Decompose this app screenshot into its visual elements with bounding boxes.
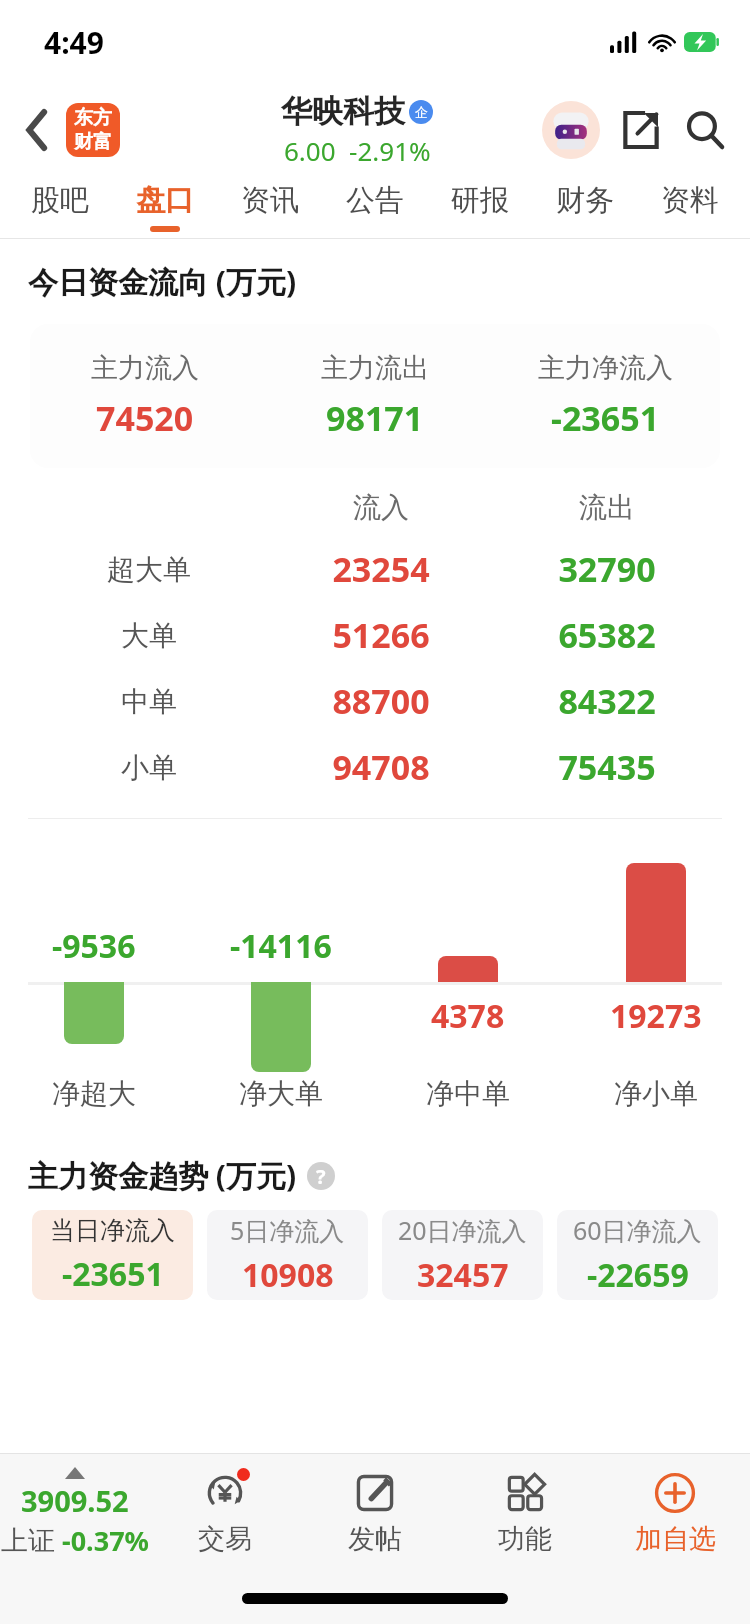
staticText: 大单 bbox=[121, 618, 177, 653]
staticText: 净超大 bbox=[52, 1076, 136, 1111]
button[interactable]: 大单 bbox=[30, 602, 720, 668]
staticText: 32457 bbox=[417, 1253, 509, 1297]
button[interactable]: 发帖 bbox=[300, 1454, 450, 1572]
staticText: 企 bbox=[415, 104, 428, 120]
staticText: -23651 bbox=[551, 395, 660, 441]
staticText: 32790 bbox=[494, 546, 720, 592]
staticText: -14116 bbox=[230, 924, 332, 968]
button[interactable]: 小单 bbox=[30, 734, 720, 800]
staticText: 94708 bbox=[268, 744, 494, 790]
button[interactable]: 超大单 bbox=[30, 536, 720, 602]
button[interactable]: 3909.52 bbox=[0, 1454, 150, 1572]
staticText: 资讯 bbox=[241, 182, 299, 219]
staticText: 研报 bbox=[451, 182, 509, 219]
staticText: 10908 bbox=[242, 1253, 334, 1297]
button[interactable]: 5日净流入 bbox=[207, 1210, 368, 1300]
staticText: 3909.52 bbox=[21, 1481, 129, 1520]
staticText: 小单 bbox=[121, 750, 177, 785]
staticText: 51266 bbox=[268, 612, 494, 658]
button[interactable]: 功能 bbox=[450, 1454, 600, 1572]
button[interactable]: 研报 bbox=[427, 176, 532, 238]
button[interactable]: Search bbox=[678, 103, 732, 157]
staticText: -0.37% bbox=[55, 1522, 149, 1559]
staticText: 主力净流入 bbox=[538, 351, 673, 385]
button[interactable]: 当日净流入 bbox=[32, 1210, 193, 1300]
staticText: 功能 bbox=[498, 1522, 552, 1556]
staticText: -9536 bbox=[52, 924, 136, 968]
staticText: 74520 bbox=[96, 395, 194, 441]
staticText: 4378 bbox=[431, 994, 505, 1038]
staticText: 上证 bbox=[1, 1524, 55, 1558]
staticText: 华映科技 bbox=[281, 92, 405, 131]
staticText: 5日净流入 bbox=[230, 1213, 345, 1247]
staticText: 发帖 bbox=[348, 1522, 402, 1556]
staticText: 60日净流入 bbox=[573, 1213, 702, 1247]
staticText: 财富 bbox=[74, 130, 112, 154]
staticText: 4:49 bbox=[44, 22, 104, 63]
staticText: 财务 bbox=[556, 182, 614, 219]
staticText: 6.00 -2.91% bbox=[284, 133, 431, 168]
button[interactable]: 中单 bbox=[30, 668, 720, 734]
staticText: 超大单 bbox=[107, 552, 191, 587]
staticText: 主力流入 bbox=[91, 351, 199, 385]
staticText: 98171 bbox=[326, 395, 424, 441]
staticText: 净大单 bbox=[239, 1076, 323, 1111]
button[interactable]: 4378 bbox=[374, 819, 562, 1119]
staticText: 84322 bbox=[494, 678, 720, 724]
staticText: 75435 bbox=[494, 744, 720, 790]
button[interactable]: Back bbox=[10, 102, 66, 158]
button[interactable]: Share bbox=[616, 105, 666, 155]
button[interactable]: Help bbox=[307, 1162, 335, 1190]
button[interactable]: 交易 bbox=[150, 1454, 300, 1572]
staticText: 资料 bbox=[661, 182, 719, 219]
staticText: 东方 bbox=[74, 106, 112, 130]
staticText: 净中单 bbox=[426, 1076, 510, 1111]
staticText: 盘口 bbox=[136, 182, 194, 219]
button[interactable]: 盘口 bbox=[112, 176, 217, 238]
staticText: 流出 bbox=[494, 490, 720, 525]
button[interactable]: -14116 bbox=[187, 819, 374, 1119]
button[interactable]: 资讯 bbox=[217, 176, 322, 238]
staticText: 当日净流入 bbox=[50, 1215, 175, 1246]
staticText: -23651 bbox=[62, 1252, 164, 1296]
button[interactable]: 19273 bbox=[562, 819, 750, 1119]
button[interactable]: -9536 bbox=[0, 819, 187, 1119]
staticText: 加自选 bbox=[635, 1522, 716, 1556]
staticText: 交易 bbox=[198, 1522, 252, 1556]
staticText: 公告 bbox=[346, 182, 404, 219]
staticText: 主力流出 bbox=[321, 351, 429, 385]
staticText: 88700 bbox=[268, 678, 494, 724]
button[interactable]: 主力流入 bbox=[30, 324, 720, 468]
button[interactable]: 20日净流入 bbox=[382, 1210, 543, 1300]
button[interactable]: 60日净流入 bbox=[557, 1210, 718, 1300]
staticText: 65382 bbox=[494, 612, 720, 658]
button[interactable]: 公告 bbox=[322, 176, 427, 238]
button[interactable]: 东方财富 bbox=[66, 103, 120, 157]
staticText: -22659 bbox=[587, 1253, 689, 1297]
staticText: ? bbox=[316, 1163, 326, 1190]
staticText: 今日资金流向 (万元) bbox=[28, 261, 297, 302]
staticText: 中单 bbox=[121, 684, 177, 719]
staticText: 主力资金趋势 (万元) bbox=[28, 1155, 297, 1196]
staticText: 净小单 bbox=[614, 1076, 698, 1111]
staticText: 23254 bbox=[268, 546, 494, 592]
staticText: 20日净流入 bbox=[398, 1213, 527, 1247]
staticText: 19273 bbox=[610, 994, 702, 1038]
button[interactable]: 财务 bbox=[532, 176, 637, 238]
staticText: 流入 bbox=[268, 490, 494, 525]
button[interactable]: 股吧 bbox=[8, 176, 112, 238]
button[interactable]: Assistant bbox=[542, 101, 600, 159]
button[interactable]: 加自选 bbox=[600, 1454, 750, 1572]
staticText: 股吧 bbox=[31, 182, 89, 219]
button[interactable]: 资料 bbox=[637, 176, 742, 238]
